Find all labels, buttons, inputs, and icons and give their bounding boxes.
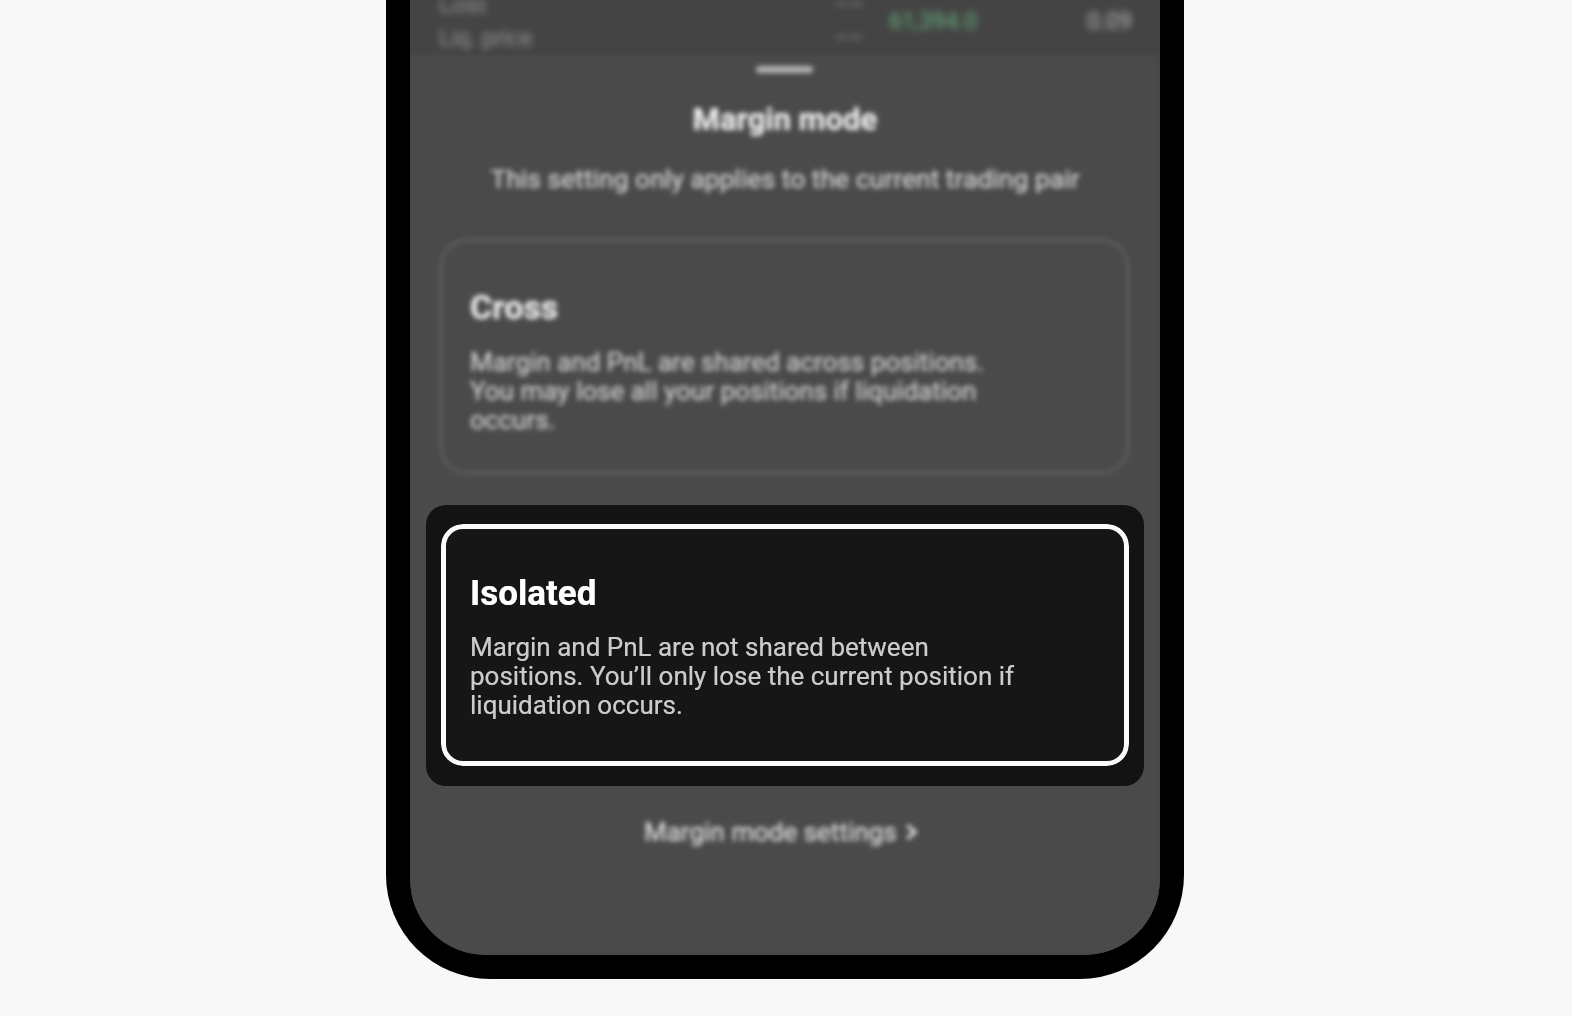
button[interactable]: Cross [440,239,1129,474]
staticText: Isolated [470,573,597,614]
staticText: This setting only applies to the current… [410,163,1160,194]
staticText: Margin and PnL are shared across positio… [470,347,998,435]
staticText: 0.09 [1087,8,1132,35]
staticText: Margin mode settings [644,817,897,847]
staticText: –– [834,0,865,19]
staticText: Cross [470,287,559,327]
button[interactable]: Isolated [441,524,1129,766]
staticText: Cost [439,0,487,19]
staticText: –– [834,25,865,52]
staticText: 61,394.0 [889,8,978,35]
staticText: Margin mode [410,101,1160,137]
staticText: Margin and PnL are not shared between po… [470,632,1032,720]
other: Open margin mode settings [902,822,922,842]
staticText: Liq. price [439,25,533,52]
button[interactable]: Margin mode settings [644,812,922,852]
